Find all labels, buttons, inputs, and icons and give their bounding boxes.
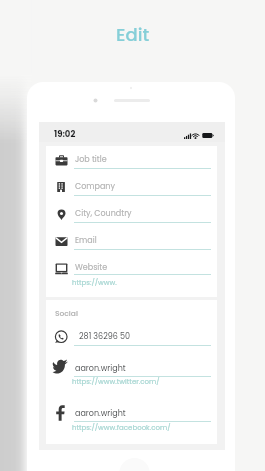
staticText: City, Coundtry <box>75 208 132 219</box>
staticText: Website <box>75 262 108 273</box>
staticText: https://www.facebook.com/ <box>72 423 171 433</box>
staticText: aaron.wright <box>75 363 126 374</box>
button[interactable]: Company <box>46 175 217 208</box>
staticText: Company <box>75 181 115 192</box>
staticText: 19:02 <box>54 128 76 140</box>
button[interactable]: Twitter <box>46 354 217 389</box>
staticText: https://www.twitter.com/ <box>72 377 160 387</box>
button[interactable]: City <box>46 202 217 235</box>
staticText: Edit <box>116 22 150 44</box>
staticText: Job title <box>75 154 107 165</box>
staticText: Email <box>75 235 97 246</box>
button[interactable]: Facebook <box>46 401 217 435</box>
staticText: aaron.wright <box>75 408 126 419</box>
button[interactable]: Website <box>46 256 217 289</box>
staticText: 281 36296 50 <box>79 331 131 342</box>
staticText: Social <box>55 308 78 318</box>
button[interactable]: WhatsApp <box>46 325 217 358</box>
button[interactable]: Job title <box>46 148 217 181</box>
button[interactable]: Email <box>46 229 217 262</box>
staticText: https://www. <box>72 278 117 288</box>
